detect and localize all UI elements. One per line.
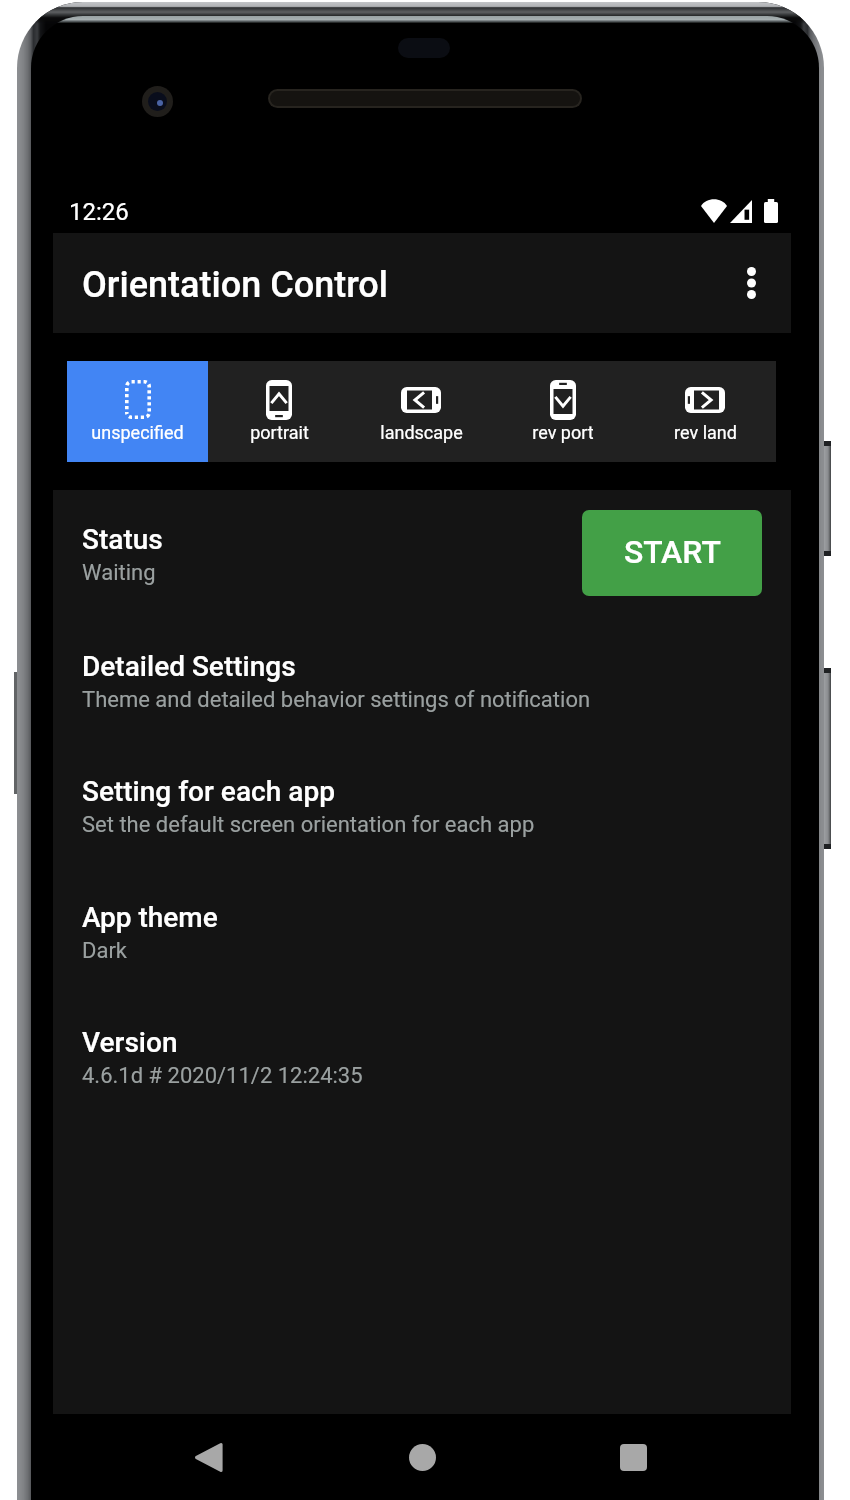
staticText: rev land — [674, 422, 737, 443]
button[interactable]: START — [582, 510, 762, 596]
staticText: portrait — [250, 422, 309, 443]
button[interactable]: unspecified — [67, 361, 208, 462]
staticText: Theme and detailed behavior settings of … — [82, 687, 591, 713]
button[interactable]: rev land — [634, 361, 776, 462]
button[interactable]: Detailed Settings — [53, 616, 791, 742]
staticText: App theme — [82, 901, 218, 934]
staticText: rev port — [532, 422, 594, 443]
staticText: Set the default screen orientation for e… — [82, 812, 535, 838]
button[interactable]: Home — [387, 1422, 457, 1492]
staticText: START — [624, 533, 721, 571]
staticText: Status — [82, 523, 163, 556]
button[interactable]: More options — [725, 257, 777, 309]
staticText: 4.6.1d # 2020/11/2 12:24:35 — [82, 1063, 363, 1089]
staticText: 12:26 — [69, 198, 129, 226]
button[interactable]: App theme — [53, 867, 791, 993]
staticText: Setting for each app — [82, 775, 335, 808]
staticText: landscape — [380, 422, 463, 443]
staticText: Detailed Settings — [82, 650, 296, 683]
button[interactable]: Setting for each app — [53, 741, 791, 867]
button[interactable]: Status — [53, 490, 791, 616]
button[interactable]: Recents — [598, 1422, 668, 1492]
staticText: Dark — [82, 938, 128, 964]
button[interactable]: Version — [53, 992, 791, 1118]
staticText: Waiting — [82, 560, 156, 586]
staticText: unspecified — [91, 422, 184, 443]
staticText: Orientation Control — [82, 264, 388, 306]
button[interactable]: rev port — [492, 361, 634, 462]
button[interactable]: landscape — [350, 361, 492, 462]
button[interactable]: portrait — [208, 361, 350, 462]
button[interactable]: Back — [173, 1422, 243, 1492]
staticText: Version — [82, 1026, 178, 1059]
